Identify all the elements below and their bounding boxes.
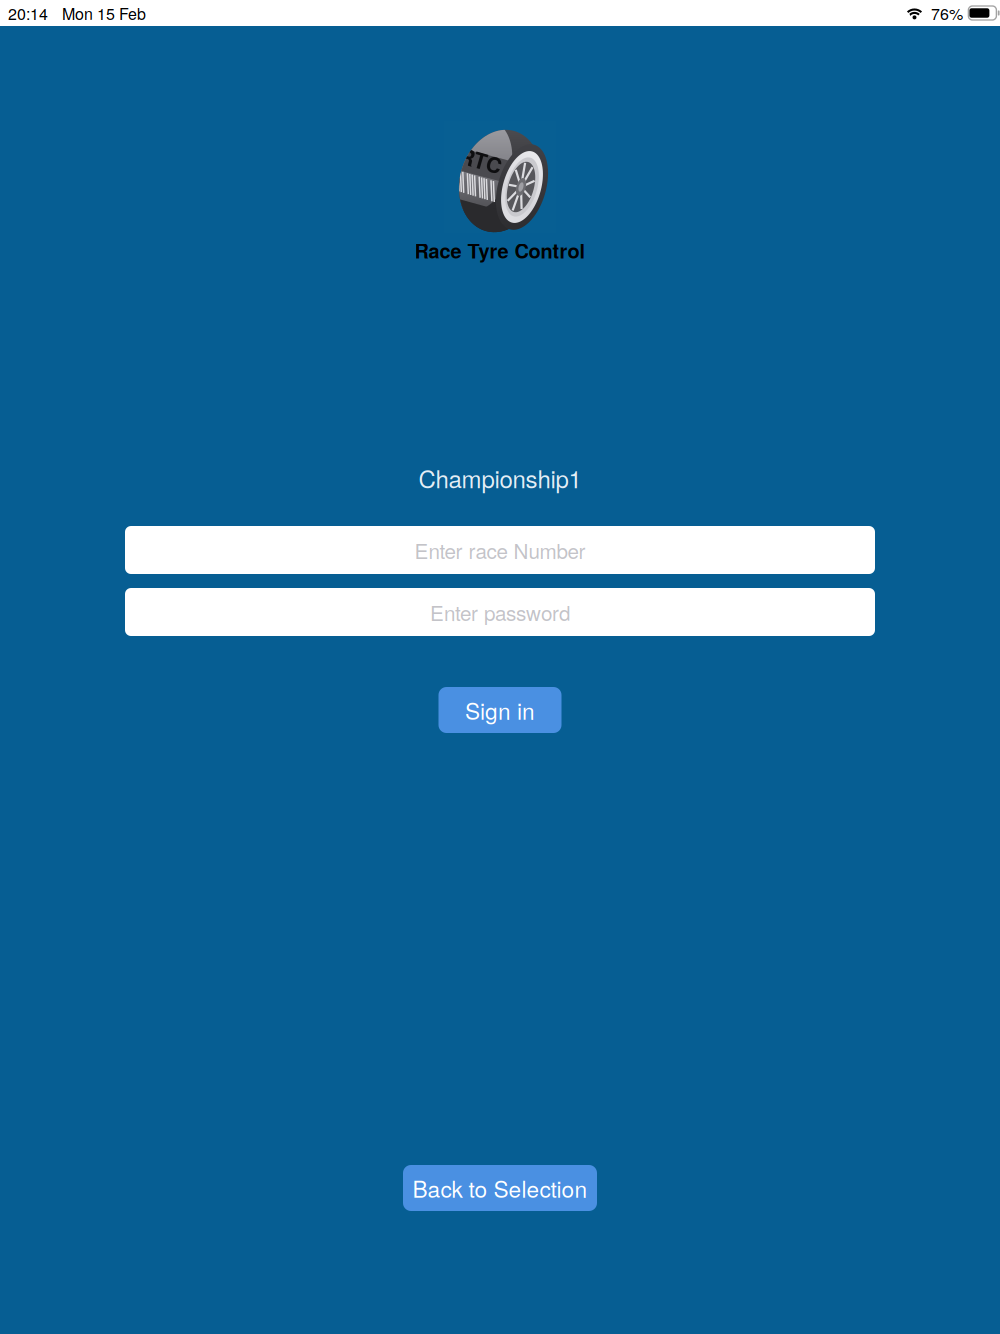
- staticText: 76%: [931, 1, 963, 24]
- button[interactable]: Back to Selection: [403, 1165, 597, 1211]
- button[interactable]: Sign in: [438, 687, 561, 733]
- staticText: Back to Selection: [412, 1172, 587, 1204]
- staticText: 20:14: [8, 1, 48, 24]
- staticText: Enter password: [430, 597, 570, 627]
- staticText: Enter race Number: [414, 535, 585, 565]
- staticText: Race Tyre Control: [414, 236, 585, 265]
- button[interactable]: Enter password: [125, 588, 875, 636]
- staticText: Sign in: [465, 694, 535, 726]
- staticText: Championship1: [418, 461, 581, 495]
- button[interactable]: Enter race Number: [125, 526, 875, 574]
- staticText: RTC: [459, 145, 502, 175]
- staticText: Mon 15 Feb: [62, 1, 146, 24]
